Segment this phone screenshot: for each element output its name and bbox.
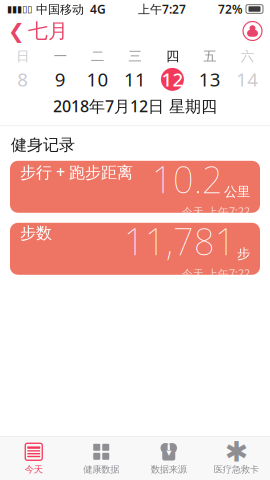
staticText: 72% — [218, 1, 243, 17]
button[interactable]: 9 — [41, 66, 79, 92]
staticText: 12 — [161, 67, 183, 92]
staticText: 13 — [199, 67, 221, 92]
button[interactable]: 健康数据 — [67, 437, 135, 480]
staticText: 今天 — [25, 464, 43, 475]
button[interactable]: 13 — [191, 66, 228, 92]
button[interactable]: 8 — [4, 66, 41, 92]
staticText: 一 — [54, 48, 67, 64]
staticText: 中国移动 4G — [32, 1, 106, 17]
staticText: 9 — [55, 67, 66, 92]
staticText: 数据来源 — [151, 464, 187, 475]
staticText: 健身记录 — [11, 135, 75, 155]
button[interactable]: 步数 — [0, 223, 270, 275]
staticText: 今天 上午7:22 — [182, 266, 250, 280]
staticText: 10.2 — [152, 155, 223, 203]
staticText: ▮▮▮▯▯ — [7, 4, 32, 14]
button[interactable]: 12 — [154, 66, 191, 92]
staticText: 2018年7月12日 星期四 — [53, 95, 217, 117]
staticText: ✱ — [225, 436, 248, 468]
staticText: 上午7:27 — [138, 1, 186, 17]
button[interactable]: 个人资料 — [235, 18, 270, 43]
button[interactable]: 10 — [79, 66, 116, 92]
staticText: 六 — [241, 48, 254, 64]
staticText: ❮ — [8, 20, 25, 42]
staticText: ▾ — [166, 446, 171, 458]
staticText: 步 — [237, 246, 250, 262]
staticText: 11,781 — [124, 217, 236, 265]
button[interactable]: ❮ — [0, 15, 76, 47]
staticText: 五 — [203, 48, 216, 64]
staticText: 日 — [16, 48, 29, 64]
button[interactable]: 今天 — [0, 437, 67, 480]
staticText: 今天 上午7:22 — [182, 204, 250, 218]
staticText: 步行 + 跑步距离 — [20, 161, 133, 182]
staticText: 二 — [91, 48, 104, 64]
staticText: 四 — [166, 48, 179, 64]
staticText: 14 — [236, 67, 258, 92]
staticText: 步数 — [20, 223, 52, 243]
button[interactable]: 14 — [229, 66, 266, 92]
staticText: 七月 — [28, 19, 68, 43]
button[interactable]: 步行 + 跑步距离 — [0, 161, 270, 213]
staticText: 三 — [128, 48, 141, 64]
button[interactable]: ✱ — [202, 437, 270, 480]
button[interactable]: 11 — [116, 66, 154, 92]
button[interactable]: ▾ — [135, 437, 202, 480]
staticText: 健康数据 — [83, 464, 119, 475]
staticText: 11 — [124, 67, 146, 92]
staticText: 8 — [17, 67, 28, 92]
staticText: 医疗急救卡 — [214, 464, 259, 475]
staticText: 公里 — [224, 184, 250, 200]
staticText: 10 — [87, 67, 109, 92]
